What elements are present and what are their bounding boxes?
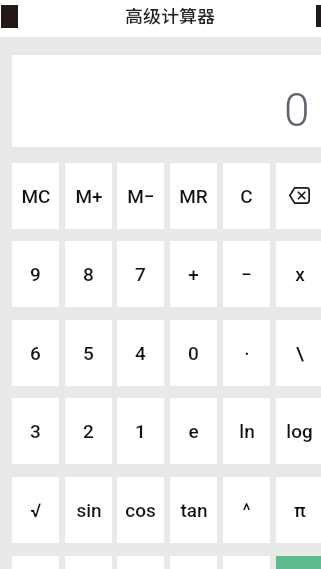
staticText: log	[286, 420, 313, 442]
staticText: 7	[135, 263, 146, 285]
staticText: e	[188, 420, 199, 442]
button[interactable]: M−	[117, 163, 164, 229]
button[interactable]: π	[276, 477, 321, 543]
staticText: ln	[239, 420, 255, 442]
staticText: 8	[83, 263, 94, 285]
staticText: 0	[284, 83, 310, 137]
button[interactable]: 4	[117, 320, 164, 386]
staticText: 0	[188, 342, 199, 364]
staticText: 5	[83, 342, 94, 364]
button[interactable]: cos	[117, 477, 164, 543]
button[interactable]: √	[12, 477, 59, 543]
button[interactable]: tan	[170, 477, 217, 543]
button[interactable]: log	[276, 398, 321, 464]
staticText: 3	[30, 420, 41, 442]
staticText: +	[188, 263, 199, 285]
staticText: ·	[244, 342, 250, 364]
staticText: \	[296, 342, 304, 364]
button[interactable]: 0	[170, 320, 217, 386]
staticText: ^	[242, 499, 251, 521]
staticText: x	[295, 263, 305, 285]
staticText: 4	[135, 342, 146, 364]
button[interactable]: sin	[65, 477, 112, 543]
button[interactable]: ·	[223, 320, 270, 386]
staticText: −	[241, 263, 252, 285]
staticText: sin	[76, 499, 102, 521]
button[interactable]: 6	[12, 320, 59, 386]
button[interactable]: 7	[117, 241, 164, 307]
button[interactable]: MC	[12, 163, 59, 229]
button[interactable]: \	[276, 320, 321, 386]
button[interactable]: 9	[12, 241, 59, 307]
staticText: cos	[125, 499, 156, 521]
staticText: √	[30, 499, 41, 521]
button[interactable]: 5	[65, 320, 112, 386]
staticText: 6	[30, 342, 41, 364]
staticText: MC	[21, 185, 51, 207]
button[interactable]: 3	[12, 398, 59, 464]
button[interactable]: +	[170, 241, 217, 307]
button[interactable]: MR	[170, 163, 217, 229]
button[interactable]: x	[276, 241, 321, 307]
staticText: 2	[83, 420, 94, 442]
button[interactable]: ln	[223, 398, 270, 464]
button[interactable]: 1	[117, 398, 164, 464]
staticText: π	[294, 499, 306, 521]
button[interactable]: 2	[65, 398, 112, 464]
button[interactable]: M+	[65, 163, 112, 229]
button[interactable]: ^	[223, 477, 270, 543]
staticText: tan	[180, 499, 208, 521]
button[interactable]: e	[170, 398, 217, 464]
button[interactable]: Backspace	[276, 163, 321, 229]
staticText: 1	[135, 420, 146, 442]
button[interactable]: 8	[65, 241, 112, 307]
button[interactable]: −	[223, 241, 270, 307]
staticText: MR	[179, 185, 208, 207]
button[interactable]: C	[223, 163, 270, 229]
staticText: 高级计算器	[125, 2, 215, 28]
staticText: M−	[127, 185, 155, 207]
staticText: M+	[75, 185, 103, 207]
staticText: C	[240, 185, 253, 207]
staticText: 9	[30, 263, 41, 285]
